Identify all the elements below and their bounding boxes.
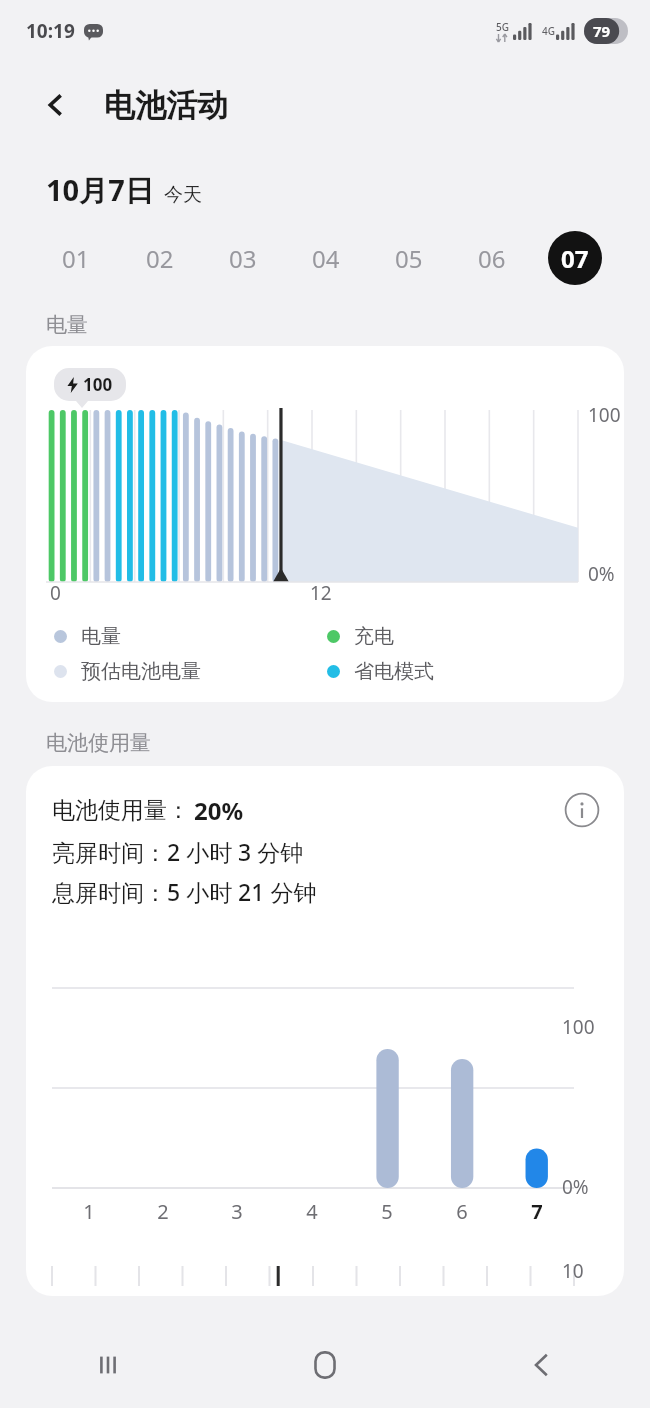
staticText: 0% <box>562 1174 589 1200</box>
staticText: 2 <box>157 1198 169 1225</box>
staticText: 4 <box>306 1198 318 1225</box>
staticText: 电池使用量： <box>52 796 190 825</box>
staticText: 06 <box>478 242 506 275</box>
staticText: 电池活动 <box>104 86 228 125</box>
button[interactable]: Home <box>216 1322 433 1408</box>
staticText: 1 <box>83 1198 95 1225</box>
staticText: 充电 <box>354 624 394 649</box>
staticText: 电池使用量 <box>46 730 151 756</box>
staticText: 12 <box>310 580 332 606</box>
button[interactable]: 05 <box>367 230 450 286</box>
staticText: 5 <box>381 1198 393 1225</box>
button[interactable]: 04 <box>284 230 367 286</box>
button[interactable]: Recent apps <box>0 1322 216 1408</box>
staticText: 10月7日 <box>46 170 154 210</box>
button[interactable]: 电池使用量： <box>26 766 624 1296</box>
staticText: 5G <box>496 20 509 34</box>
staticText: 电量 <box>46 312 88 338</box>
staticText: 息屏时间：5 小时 21 分钟 <box>52 876 317 907</box>
staticText: 0 <box>50 580 61 606</box>
staticText: 10 <box>562 1258 584 1284</box>
staticText: 今天 <box>164 183 202 207</box>
button[interactable]: 03 <box>201 230 284 286</box>
staticText: 100 <box>83 373 113 396</box>
staticText: 亮屏时间：2 小时 3 分钟 <box>52 836 304 867</box>
button[interactable]: Back <box>34 83 78 127</box>
staticText: 20% <box>194 794 244 827</box>
button[interactable]: 01 <box>34 230 118 286</box>
button[interactable]: Information <box>558 786 606 834</box>
staticText: 省电模式 <box>354 659 434 684</box>
staticText: 0% <box>588 561 615 587</box>
staticText: 4G <box>542 24 555 38</box>
staticText: 预估电池电量 <box>81 659 201 684</box>
staticText: 02 <box>146 242 174 275</box>
staticText: 100 <box>588 402 621 428</box>
staticText: 3 <box>231 1198 243 1225</box>
staticText: 电量 <box>81 624 121 649</box>
staticText: 100 <box>562 1014 595 1040</box>
button[interactable]: Back <box>433 1322 650 1408</box>
staticText: 7 <box>531 1198 543 1225</box>
button[interactable]: 07 <box>533 230 616 286</box>
staticText: 01 <box>62 242 90 275</box>
staticText: 04 <box>312 242 340 275</box>
button[interactable]: 06 <box>450 230 533 286</box>
staticText: 6 <box>456 1198 468 1225</box>
staticText: 07 <box>561 242 589 275</box>
staticText: 03 <box>229 242 257 275</box>
staticText: 05 <box>395 242 423 275</box>
button[interactable]: 02 <box>118 230 201 286</box>
staticText: 10:19 <box>26 18 75 44</box>
staticText: 79 <box>593 21 611 41</box>
button[interactable]: 100 <box>26 346 624 702</box>
